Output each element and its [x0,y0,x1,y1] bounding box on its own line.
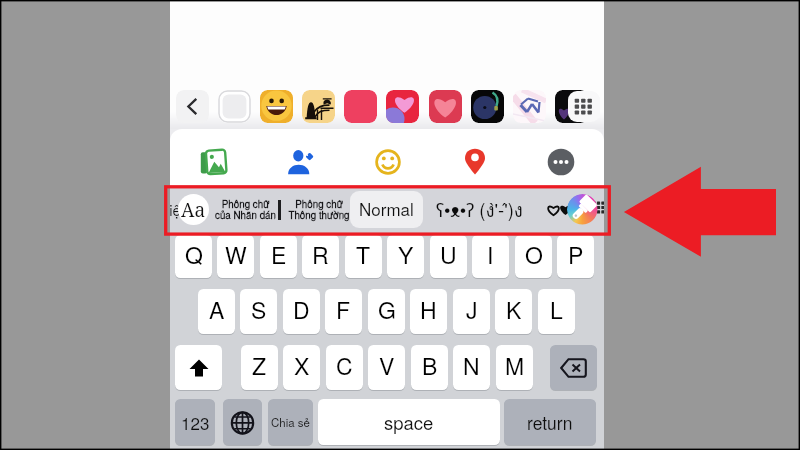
staticText: V [379,349,395,382]
staticText: T [356,238,371,271]
button[interactable]: return [504,399,596,445]
staticText: N [463,349,480,382]
staticText: I [487,238,494,271]
button[interactable]: Sticker [555,90,588,123]
staticText: W [225,238,247,271]
staticText: Chia sẻ [271,414,310,430]
staticText: Phông chữ của Nhãn dán [215,197,276,222]
button[interactable]: S [240,289,277,334]
staticText: 123 [181,410,210,434]
staticText: return [527,410,573,435]
button[interactable]: Sticker [344,90,377,123]
staticText: R [312,238,329,271]
staticText: M [505,349,525,382]
staticText: E [271,238,287,271]
staticText: D [293,293,310,326]
button[interactable]: ʕ•ᴥ•ʔ (ง'̀-'́)ง [424,196,534,223]
button[interactable]: Heart sticker [386,90,419,123]
button[interactable]: Q [175,235,212,278]
button[interactable]: Normal [350,191,423,228]
staticText: G [378,293,396,326]
button[interactable]: R [302,235,339,278]
button[interactable]: Record sticker [471,90,504,123]
button[interactable]: Colour palette [567,194,598,225]
button[interactable]: T [345,235,382,278]
button[interactable]: Sticker [302,90,335,123]
button[interactable]: Z [241,345,278,390]
button[interactable]: Chia sẻ [268,399,313,445]
staticText: Z [252,349,267,382]
staticText: A [209,293,225,326]
button[interactable]: B [411,345,448,390]
staticText: B [422,349,438,382]
button[interactable]: E [260,235,297,278]
button[interactable]: Change keyboard [223,399,262,445]
button[interactable]: Glasses sticker [513,90,546,123]
button[interactable]: U [430,235,467,278]
button[interactable]: Y [387,235,424,278]
button[interactable]: M [496,345,533,390]
staticText: Y [398,238,414,271]
button[interactable]: A [198,289,235,334]
button[interactable]: Heart sticker [429,90,462,123]
button[interactable]: V [368,345,405,390]
button[interactable]: G [368,289,405,334]
button[interactable]: Back [176,90,209,123]
button[interactable]: Phông chữ của Nhãn dán [205,196,285,223]
staticText: Q [185,238,203,271]
button[interactable]: K [495,289,532,334]
button[interactable]: I [472,235,509,278]
staticText: Normal [359,196,414,220]
button[interactable]: Shift [175,345,222,390]
button[interactable]: Favorite [547,203,560,217]
staticText: iệ [170,199,181,220]
button[interactable]: Sticker font [178,194,209,225]
button[interactable]: Location [458,145,492,179]
staticText: O [525,238,543,271]
button[interactable]: Emoji [371,145,405,179]
button[interactable]: X [283,345,320,390]
button[interactable]: O [515,235,552,278]
staticText: P [568,238,584,271]
staticText: U [440,238,457,271]
staticText: Aa [181,197,206,223]
button[interactable]: Phông chữ Thông thường [279,196,359,223]
button[interactable]: Smiley sticker [260,90,293,123]
staticText: Phông chữ Thông thường [288,197,350,222]
button[interactable]: J [453,289,490,334]
button[interactable]: W [217,235,254,278]
button[interactable]: N [453,345,490,390]
staticText: C [336,349,353,382]
button[interactable]: C [326,345,363,390]
button[interactable]: Photos [197,145,231,179]
button[interactable]: D [283,289,320,334]
staticText: H [420,293,437,326]
button[interactable]: All stickers [568,91,600,122]
button[interactable]: 123 [175,399,215,445]
staticText: L [550,293,563,326]
button[interactable]: P [557,235,594,278]
button[interactable]: H [410,289,447,334]
staticText: J [466,293,478,326]
staticText: X [294,349,310,382]
button[interactable]: F [325,289,362,334]
staticText: F [336,293,351,326]
button[interactable]: Tag people [284,145,318,179]
button[interactable]: space [318,399,500,445]
button[interactable]: Blank sticker [218,90,251,123]
staticText: space [384,409,434,435]
button[interactable]: More options [544,145,578,179]
button[interactable]: L [538,289,575,334]
staticText: S [251,293,267,326]
staticText: K [506,293,522,326]
staticText: ʕ•ᴥ•ʔ (ง'̀-'́)ง [436,196,523,223]
button[interactable]: Delete [550,345,597,390]
